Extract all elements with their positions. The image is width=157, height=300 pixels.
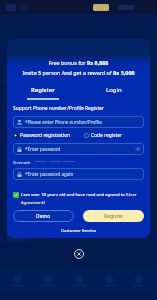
button[interactable]: Customer Service — [13, 227, 144, 233]
button[interactable]: Code register — [84, 132, 122, 139]
button[interactable]: Download App — [93, 4, 109, 11]
button[interactable]: Register — [83, 210, 144, 222]
button[interactable]: *Enter password — [16, 143, 141, 155]
staticText: *Enter password — [25, 146, 61, 152]
button[interactable] — [36, 275, 60, 287]
staticText: I am over 18 years old and have read and… — [21, 191, 144, 205]
button[interactable]: Password registration — [13, 132, 71, 139]
staticText: Login — [106, 86, 122, 94]
staticText: Strength — [13, 159, 31, 164]
button[interactable] — [127, 275, 151, 287]
staticText: Invite 5 person And get a reward of Rs 5… — [7, 69, 150, 76]
button[interactable] — [6, 275, 30, 287]
button[interactable]: Login — [78, 86, 150, 100]
staticText: Demo — [36, 213, 51, 220]
button[interactable]: Register — [7, 86, 78, 100]
staticText: Register — [104, 213, 124, 220]
button[interactable]: I am over 18 years old and have read and… — [13, 191, 144, 205]
staticText: *Please enter Phone number/Profile — [25, 119, 102, 125]
button[interactable]: Close — [74, 249, 84, 259]
button[interactable]: Demo — [13, 210, 74, 222]
staticText: *Enter password again — [25, 171, 74, 177]
staticText: Code register — [91, 132, 122, 139]
staticText: Free bonus for Rs 8,888 — [7, 59, 150, 66]
button[interactable] — [67, 275, 91, 287]
button[interactable] — [97, 275, 121, 287]
staticText: Support Phone number/Profile Register — [13, 105, 104, 112]
button[interactable]: *Please enter Phone number/Profile — [16, 116, 141, 128]
button[interactable]: *Enter password again — [16, 168, 141, 180]
staticText: Password registration — [20, 132, 71, 139]
button[interactable]: Profile — [5, 4, 16, 11]
staticText: Register — [31, 86, 55, 94]
